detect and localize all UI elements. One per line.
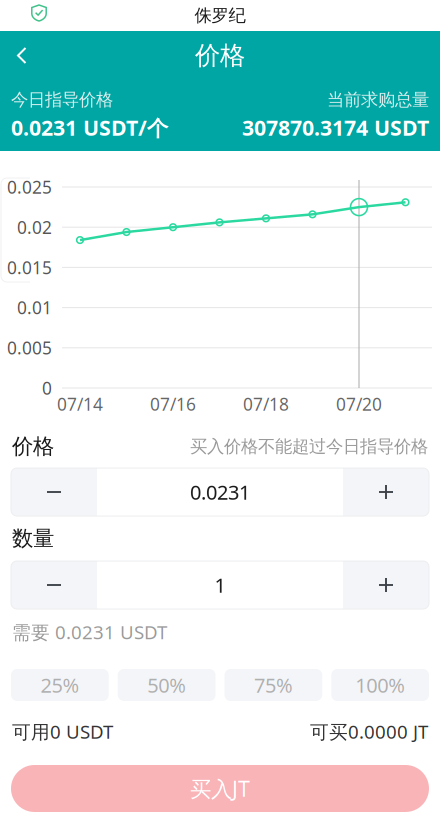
staticText: 0 — [42, 376, 52, 399]
staticText: 今日指导价格 — [11, 89, 113, 110]
button[interactable]: Back — [0, 38, 41, 72]
staticText: 07/16 — [150, 392, 196, 415]
button[interactable]: Decrease — [11, 561, 97, 609]
staticText: 0.01 — [17, 296, 52, 319]
staticText: 25% — [40, 672, 79, 698]
staticText: 50% — [147, 672, 186, 698]
staticText: 0.0231 USDT/个 — [11, 113, 168, 142]
button[interactable]: Increase — [343, 561, 429, 609]
staticText: 0.02 — [17, 216, 52, 239]
staticText: 侏罗纪 — [194, 5, 245, 26]
staticText: 当前求购总量 — [327, 89, 429, 110]
button[interactable]: 75% — [224, 669, 322, 701]
staticText: 价格 — [12, 433, 54, 460]
staticText: 需要 0.0231 USDT — [12, 620, 167, 644]
button[interactable]: Decrease — [11, 468, 97, 516]
staticText: 0.015 — [7, 256, 52, 279]
staticText: 0.0231 — [190, 479, 250, 505]
staticText: 可买0.0000 JT — [310, 719, 428, 744]
staticText: 0.005 — [7, 336, 52, 359]
staticText: 数量 — [12, 525, 54, 552]
button[interactable]: 买入JT — [11, 765, 429, 812]
button[interactable]: Increase — [343, 468, 429, 516]
button[interactable]: 50% — [118, 669, 216, 701]
button[interactable]: 100% — [331, 669, 429, 701]
staticText: 07/18 — [243, 392, 289, 415]
staticText: 价格 — [195, 40, 245, 71]
staticText: 307870.3174 USDT — [242, 113, 429, 142]
staticText: 买入价格不能超过今日指导价格 — [190, 436, 428, 457]
staticText: 0.025 — [7, 175, 52, 198]
staticText: 1 — [214, 572, 225, 598]
staticText: 07/14 — [57, 392, 103, 415]
staticText: 可用0 USDT — [12, 719, 113, 744]
staticText: 75% — [254, 672, 293, 698]
staticText: 100% — [355, 672, 405, 698]
button[interactable]: 25% — [11, 669, 109, 701]
staticText: 买入JT — [190, 774, 250, 803]
staticText: 07/20 — [336, 392, 382, 415]
